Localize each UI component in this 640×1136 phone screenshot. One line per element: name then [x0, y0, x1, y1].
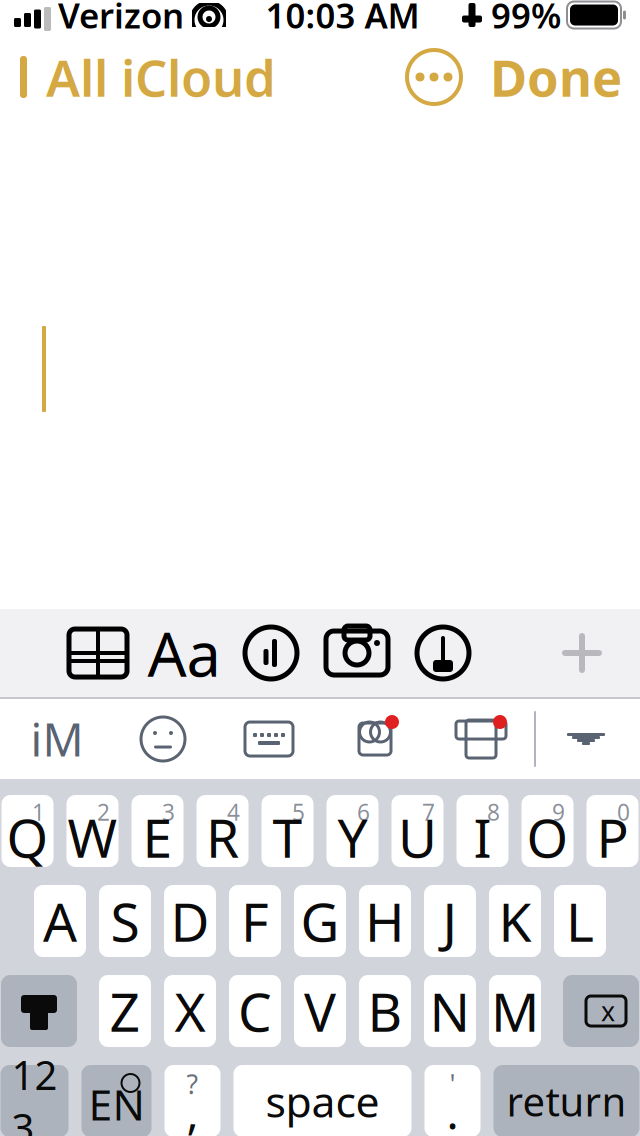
button[interactable]: B — [359, 975, 411, 1047]
staticText: U — [398, 802, 437, 872]
button[interactable]: More options — [396, 37, 472, 117]
staticText: B — [367, 976, 402, 1046]
button[interactable]: 3 — [131, 795, 183, 867]
staticText: R — [206, 802, 239, 872]
button[interactable]: F — [229, 885, 281, 957]
button[interactable]: 123 — [0, 1065, 68, 1136]
staticText: 2 — [97, 797, 110, 827]
button[interactable]: N — [424, 975, 476, 1047]
staticText: I — [473, 802, 491, 872]
button[interactable]: Keyboard — [216, 699, 322, 779]
staticText: 0 — [617, 797, 630, 827]
button[interactable]: 0 — [586, 795, 638, 867]
staticText: G — [300, 886, 339, 956]
staticText: O — [526, 802, 568, 872]
staticText: C — [238, 976, 272, 1046]
button[interactable]: G — [294, 885, 346, 957]
staticText: iM — [30, 709, 83, 769]
button[interactable]: Close keyboard — [544, 609, 618, 697]
button[interactable]: Collapse — [536, 699, 636, 779]
staticText: E — [142, 802, 172, 872]
staticText: Verizon — [58, 0, 184, 38]
button[interactable]: Format text — [140, 609, 228, 697]
staticText: M — [491, 976, 539, 1046]
button[interactable]: Markup — [400, 609, 486, 697]
button[interactable]: All iCloud — [0, 37, 290, 117]
staticText: 1 — [32, 797, 45, 827]
button[interactable]: Z — [99, 975, 151, 1047]
staticText: All iCloud — [46, 43, 276, 111]
staticText: L — [566, 886, 594, 956]
staticText: space — [265, 1073, 379, 1129]
button[interactable]: Favorites — [322, 699, 428, 779]
button[interactable]: 6 — [326, 795, 378, 867]
staticText: , — [186, 1082, 198, 1136]
button[interactable]: 1 — [1, 795, 53, 867]
button[interactable]: Table — [56, 609, 140, 697]
staticText: P — [596, 802, 628, 872]
button[interactable]: Stickers store — [428, 699, 534, 779]
staticText: Z — [109, 976, 140, 1046]
button[interactable]: C — [229, 975, 281, 1047]
staticText: 9 — [552, 797, 565, 827]
button[interactable]: L — [554, 885, 606, 957]
button[interactable]: Camera — [314, 609, 400, 697]
staticText: . — [446, 1082, 458, 1136]
button[interactable]: 7 — [391, 795, 443, 867]
button[interactable]: A — [34, 885, 86, 957]
staticText: V — [304, 976, 336, 1046]
staticText: Done — [490, 43, 622, 111]
staticText: 3 — [162, 797, 175, 827]
staticText: ' — [449, 1066, 455, 1102]
button[interactable]: Done — [472, 37, 640, 117]
button[interactable]: space — [233, 1065, 411, 1136]
staticText: F — [241, 886, 269, 956]
staticText: J — [442, 886, 457, 956]
staticText: return — [506, 1074, 626, 1127]
button[interactable]: ' — [424, 1065, 480, 1136]
staticText: W — [67, 802, 117, 872]
staticText: Q — [6, 802, 48, 872]
button[interactable]: Delete — [563, 975, 639, 1047]
staticText: 7 — [422, 797, 435, 827]
button[interactable]: Shift — [1, 975, 77, 1047]
button[interactable]: J — [424, 885, 476, 957]
staticText: Y — [337, 802, 367, 872]
button[interactable]: X — [164, 975, 216, 1047]
staticText: N — [429, 976, 470, 1046]
button[interactable]: Checklist — [228, 609, 314, 697]
staticText: D — [170, 886, 209, 956]
staticText: 4 — [227, 797, 240, 827]
button[interactable]: D — [164, 885, 216, 957]
staticText: 6 — [357, 797, 370, 827]
button[interactable]: S — [99, 885, 151, 957]
staticText: EN — [88, 1076, 144, 1132]
staticText: X — [174, 976, 205, 1046]
button[interactable]: return — [493, 1065, 639, 1136]
button[interactable]: Stickers — [110, 699, 216, 779]
button[interactable]: V — [294, 975, 346, 1047]
staticText: A — [43, 886, 77, 956]
button[interactable]: 8 — [456, 795, 508, 867]
staticText: x — [601, 993, 615, 1029]
staticText: 8 — [487, 797, 500, 827]
button[interactable]: Next keyboard — [81, 1065, 151, 1136]
staticText: 5 — [292, 797, 305, 827]
staticText: ? — [186, 1066, 198, 1102]
button[interactable]: iMessage apps — [4, 699, 110, 779]
button[interactable]: H — [359, 885, 411, 957]
staticText: Aa — [147, 612, 220, 694]
button[interactable]: 9 — [521, 795, 573, 867]
button[interactable]: 4 — [196, 795, 248, 867]
staticText: S — [110, 886, 139, 956]
staticText: H — [365, 886, 405, 956]
staticText: T — [272, 802, 302, 872]
staticText: 123 — [11, 1048, 57, 1136]
button[interactable]: K — [489, 885, 541, 957]
staticText: 99% — [491, 0, 561, 38]
button[interactable]: 2 — [66, 795, 118, 867]
staticText: K — [498, 886, 531, 956]
button[interactable]: ? — [164, 1065, 220, 1136]
button[interactable]: M — [489, 975, 541, 1047]
button[interactable]: 5 — [261, 795, 313, 867]
